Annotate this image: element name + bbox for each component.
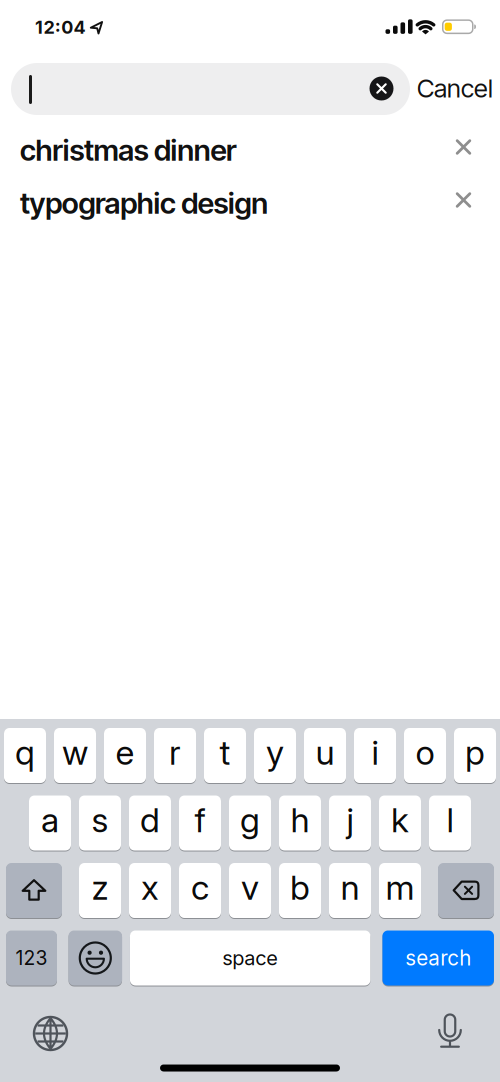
button[interactable]: Clear text (369, 76, 393, 100)
button[interactable]: x (129, 863, 171, 918)
button[interactable]: Dictate (429, 1005, 471, 1057)
staticText: 12:04 (35, 16, 86, 38)
button[interactable]: Shift (6, 863, 62, 918)
staticText: r (169, 732, 181, 773)
staticText: 123 (15, 946, 47, 970)
button[interactable]: l (429, 795, 471, 850)
button[interactable]: r (154, 728, 196, 783)
button[interactable]: n (329, 863, 371, 918)
button[interactable]: Cancel (417, 73, 493, 104)
button[interactable]: k (379, 795, 421, 850)
button[interactable]: b (279, 863, 321, 918)
staticText: h (290, 799, 309, 840)
button[interactable]: a (29, 795, 71, 850)
button[interactable]: w (54, 728, 96, 783)
button[interactable]: j (329, 795, 371, 850)
staticText: v (241, 867, 259, 908)
button[interactable]: v (229, 863, 271, 918)
staticText: p (465, 732, 485, 773)
staticText: b (290, 867, 310, 908)
button[interactable]: Emoji (68, 930, 122, 985)
staticText: x (141, 867, 159, 908)
staticText: s (91, 799, 108, 840)
staticText: n (340, 867, 359, 908)
button[interactable]: f (179, 795, 221, 850)
staticText: typographic design (20, 185, 268, 221)
staticText: christmas dinner (20, 132, 237, 168)
button[interactable]: Numbers (6, 930, 57, 985)
staticText: o (415, 732, 434, 773)
staticText: u (315, 732, 334, 773)
staticText: search (405, 945, 471, 970)
button[interactable]: m (379, 863, 421, 918)
button[interactable]: p (454, 728, 496, 783)
button[interactable]: search (382, 930, 494, 985)
button[interactable]: Search (11, 63, 410, 115)
button[interactable]: e (104, 728, 146, 783)
button[interactable]: g (229, 795, 271, 850)
staticText: c (191, 867, 209, 908)
button[interactable]: h (279, 795, 321, 850)
button[interactable]: t (204, 728, 246, 783)
button[interactable]: i (354, 728, 396, 783)
staticText: k (391, 799, 409, 840)
button[interactable]: u (304, 728, 346, 783)
button[interactable]: Remove typographic design (448, 184, 479, 215)
staticText: t (219, 732, 230, 773)
button[interactable]: y (254, 728, 296, 783)
button[interactable]: s (79, 795, 121, 850)
staticText: Cancel (417, 73, 493, 104)
staticText: g (240, 799, 260, 840)
staticText: e (115, 732, 134, 773)
staticText: y (266, 732, 284, 773)
staticText: q (15, 732, 35, 773)
button[interactable]: z (79, 863, 121, 918)
staticText: j (346, 799, 353, 840)
staticText: d (140, 799, 160, 840)
button[interactable]: space (130, 930, 370, 985)
button[interactable]: d (129, 795, 171, 850)
staticText: space (222, 946, 278, 970)
staticText: w (62, 732, 88, 773)
staticText: a (41, 799, 59, 840)
staticText: z (91, 867, 108, 908)
button[interactable]: Next keyboard (25, 1008, 75, 1058)
button[interactable]: christmas dinner (20, 124, 440, 176)
staticText: l (446, 799, 453, 840)
button[interactable]: o (404, 728, 446, 783)
staticText: f (194, 799, 205, 840)
button[interactable]: q (4, 728, 46, 783)
button[interactable]: Delete (438, 863, 494, 918)
button[interactable]: c (179, 863, 221, 918)
button[interactable]: typographic design (20, 177, 440, 229)
button[interactable]: Remove christmas dinner (448, 131, 479, 162)
staticText: m (385, 867, 414, 908)
staticText: i (371, 732, 378, 773)
